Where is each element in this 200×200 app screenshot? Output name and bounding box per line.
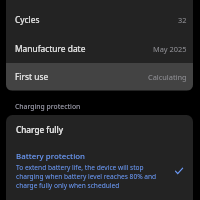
staticText: Battery protection [16,151,86,162]
staticText: 32 [178,15,187,25]
staticText: Cycles [15,14,40,25]
staticText: Calculating [148,72,187,82]
button[interactable]: First use [6,63,193,90]
staticText: May 2025 [153,44,187,54]
staticText: Charge fully [16,124,64,135]
staticText: Manufacture date [15,43,86,54]
staticText: Charging protection [15,102,81,111]
button[interactable]: Cycles [6,5,193,34]
button[interactable]: Manufacture date [6,34,193,63]
other: Battery protection enabled [171,156,187,186]
button[interactable]: Battery protection [6,152,193,191]
staticText: To extend battery life, the device will … [16,163,162,190]
staticText: First use [15,71,49,82]
